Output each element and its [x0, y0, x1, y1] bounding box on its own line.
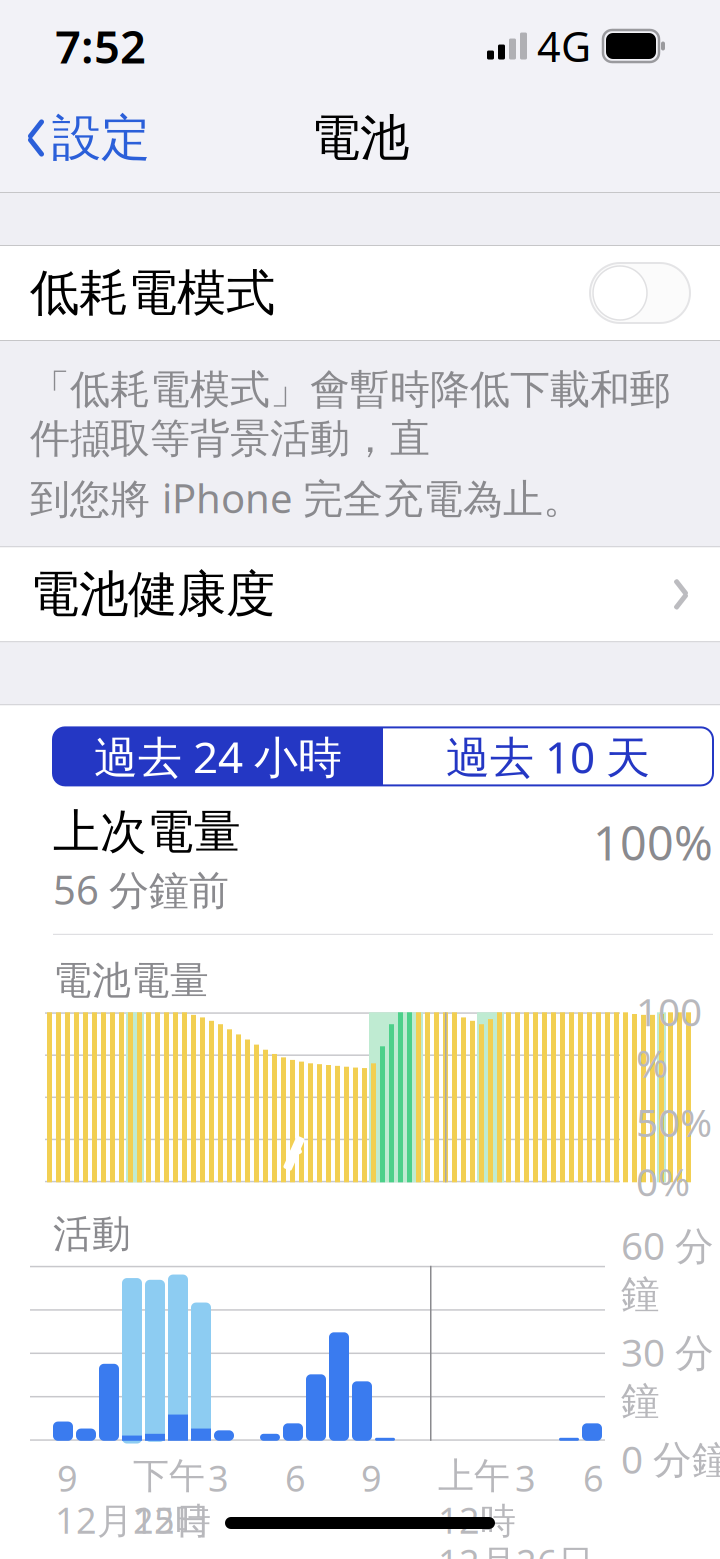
staticText: 過去 24 小時 [94, 727, 342, 786]
staticText: 12月25日 [55, 1496, 211, 1544]
staticText: 下午 [133, 1454, 205, 1498]
staticText: 9 [57, 1454, 78, 1502]
staticText: 7:52 [55, 16, 146, 76]
staticText: 過去 10 天 [446, 727, 650, 786]
button[interactable]: 設定 [10, 96, 166, 180]
staticText: 30 分鐘 [621, 1326, 714, 1425]
staticText: 4G [537, 19, 591, 73]
staticText: 上午 [438, 1454, 510, 1498]
staticText: 9 [361, 1454, 382, 1502]
staticText: 電池健康度 [30, 564, 275, 625]
staticText: 6 [583, 1454, 604, 1502]
staticText: 到您將 iPhone 完全充電為止。 [30, 471, 583, 524]
staticText: 100% [593, 811, 713, 873]
staticText: 12時 [438, 1496, 516, 1544]
staticText: 12時 [133, 1496, 211, 1544]
staticText: 電池 [311, 108, 409, 168]
staticText: 50% [636, 1096, 712, 1148]
staticText: 活動 [53, 1210, 131, 1258]
staticText: 上次電量 [53, 803, 241, 861]
staticText: 電池電量 [53, 957, 209, 1004]
staticText: 0% [636, 1156, 690, 1207]
staticText: 56 分鐘前 [53, 863, 229, 916]
staticText: 0 分鐘 [621, 1433, 720, 1484]
staticText: 「低耗電模式」會暫時降低下載和郵件擷取等背景活動，直 [30, 365, 670, 463]
staticText: 60 分鐘 [621, 1219, 714, 1318]
button[interactable]: 過去 24 小時 [53, 727, 383, 785]
button[interactable]: 過去 10 天 [383, 727, 713, 785]
staticText: 設定 [52, 108, 150, 168]
staticText: 3 [208, 1454, 229, 1502]
staticText: 低耗電模式 [30, 263, 275, 323]
staticText: 100% [636, 986, 702, 1088]
staticText: 3 [515, 1454, 536, 1502]
button[interactable]: 低耗電模式 [0, 246, 720, 340]
staticText: 6 [285, 1454, 306, 1502]
button[interactable]: 電池健康度 [0, 547, 720, 641]
staticText: 12月26日 [438, 1538, 594, 1559]
